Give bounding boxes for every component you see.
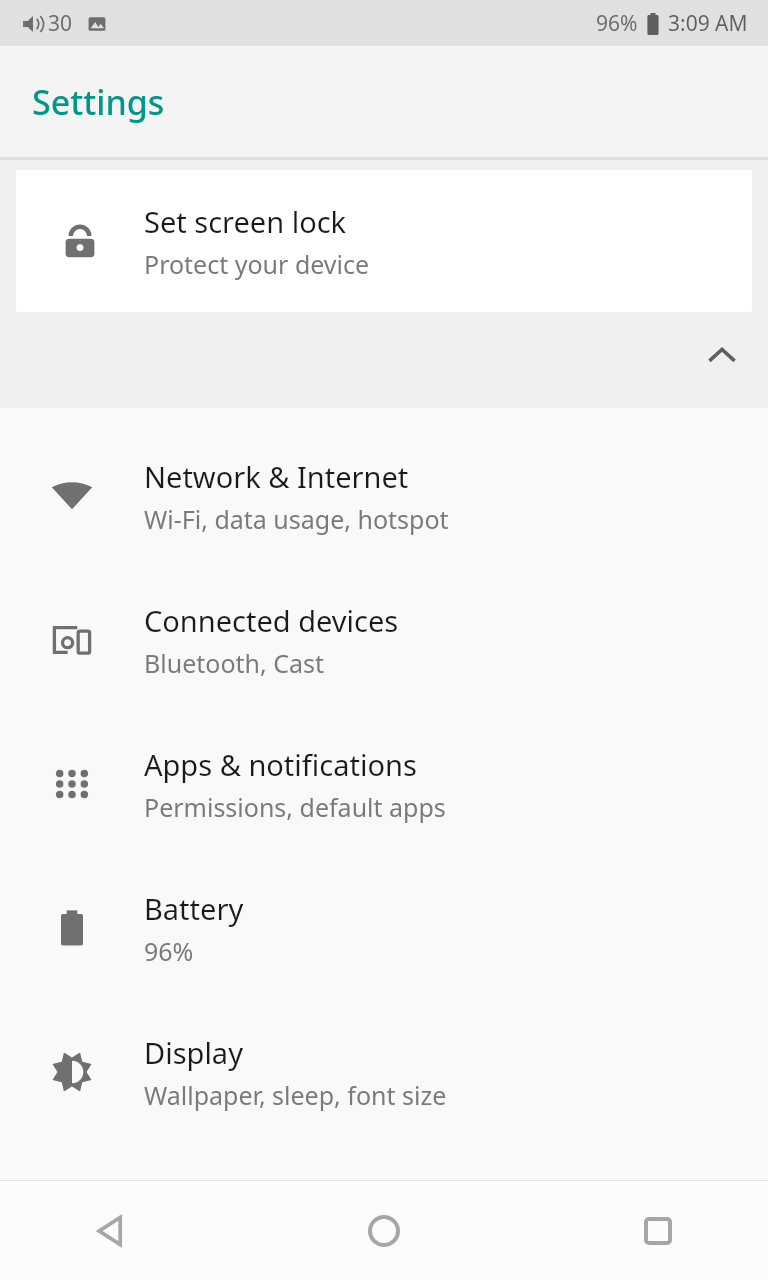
staticText: Wi-Fi, data usage, hotspot [144, 502, 449, 536]
button[interactable]: Display [0, 1000, 768, 1144]
staticText: Settings [32, 79, 165, 125]
staticText: 3:09 AM [668, 9, 748, 38]
button[interactable]: Home [256, 1181, 512, 1280]
button[interactable]: Settings [0, 1144, 768, 1280]
staticText: Display [144, 1033, 243, 1072]
button[interactable]: Network & Internet [0, 424, 768, 568]
button[interactable]: Collapse suggestions [694, 328, 750, 384]
staticText: Network & Internet [144, 457, 409, 496]
button[interactable]: Connected devices [0, 568, 768, 712]
staticText: 30 [48, 9, 73, 38]
button[interactable]: Recents [512, 1181, 768, 1280]
staticText: Battery [144, 889, 244, 928]
staticText: Bluetooth, Cast [144, 646, 325, 680]
button[interactable]: Back [0, 1181, 256, 1280]
staticText: Permissions, default apps [144, 790, 446, 824]
staticText: Connected devices [144, 601, 399, 640]
staticText: Wallpaper, sleep, font size [144, 1078, 447, 1112]
button[interactable]: Set screen lock [16, 170, 752, 312]
staticText: 96% [596, 9, 638, 38]
staticText: 96% [144, 934, 194, 968]
button[interactable]: Apps & notifications [0, 712, 768, 856]
staticText: Set screen lock [144, 202, 347, 241]
button[interactable]: Battery [0, 856, 768, 1000]
staticText: Protect your device [144, 247, 370, 281]
staticText: Apps & notifications [144, 745, 417, 784]
